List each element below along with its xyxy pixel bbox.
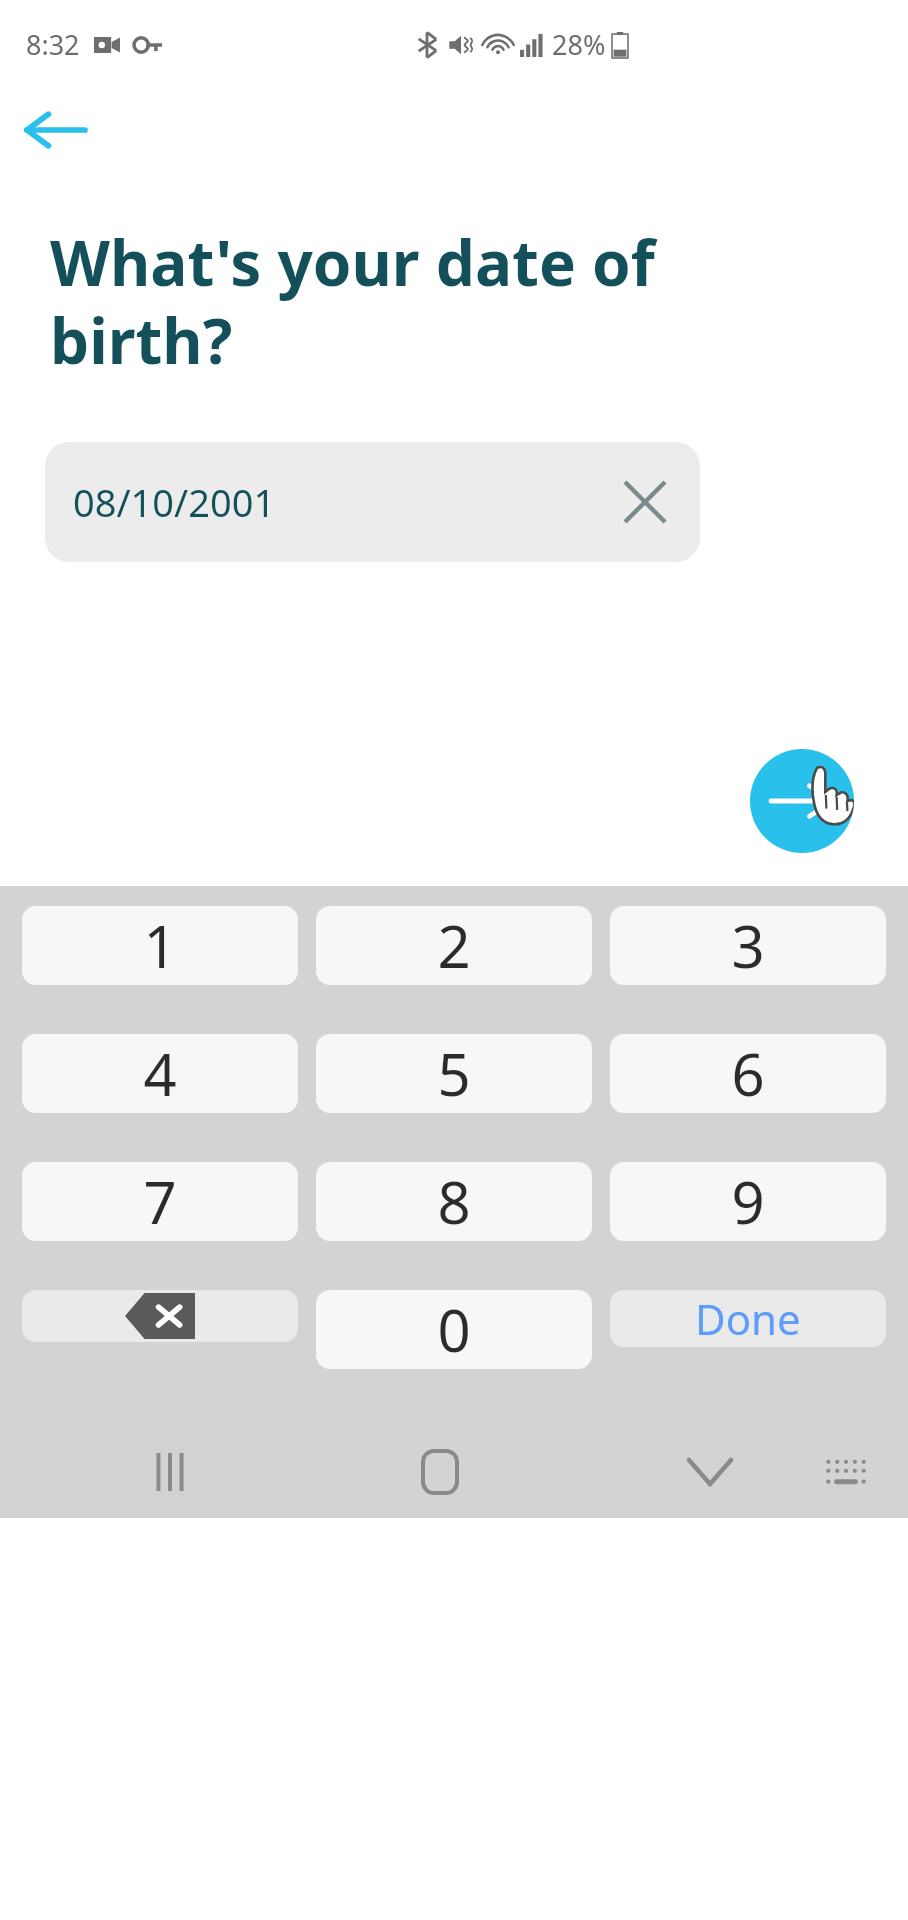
staticText: 2	[437, 906, 471, 985]
button[interactable]: Switch keyboard	[806, 1432, 886, 1512]
button[interactable]: 3	[610, 906, 886, 985]
button[interactable]: 8	[316, 1162, 592, 1241]
staticText: 6	[731, 1034, 765, 1113]
button[interactable]: Next	[750, 749, 854, 853]
button[interactable]: 7	[22, 1162, 298, 1241]
button[interactable]: 5	[316, 1034, 592, 1113]
button[interactable]: Hide keyboard	[670, 1432, 750, 1512]
staticText: 3	[731, 906, 765, 985]
button[interactable]: Back	[18, 92, 94, 168]
staticText: 8:32	[26, 26, 80, 63]
button[interactable]: Recents	[130, 1432, 210, 1512]
button[interactable]: 4	[22, 1034, 298, 1113]
button[interactable]: Clear	[618, 475, 672, 529]
staticText: 7	[143, 1162, 177, 1241]
staticText: 1	[143, 906, 177, 985]
staticText: 28%	[552, 26, 606, 63]
button[interactable]: 1	[22, 906, 298, 985]
button[interactable]: 08/10/2001	[45, 442, 700, 562]
staticText: 08/10/2001	[73, 476, 276, 528]
staticText: 9	[731, 1162, 765, 1241]
staticText: 8	[437, 1162, 471, 1241]
staticText: 0	[437, 1290, 471, 1369]
button[interactable]: Home	[400, 1432, 480, 1512]
button[interactable]: 0	[316, 1290, 592, 1369]
button[interactable]: Done	[610, 1290, 886, 1347]
staticText: What's your date of birth?	[50, 220, 818, 382]
button[interactable]: 2	[316, 906, 592, 985]
button[interactable]: 9	[610, 1162, 886, 1241]
staticText: 5	[437, 1034, 471, 1113]
staticText: 4	[143, 1034, 177, 1113]
button[interactable]: Backspace	[22, 1290, 298, 1342]
button[interactable]: 6	[610, 1034, 886, 1113]
staticText: Done	[695, 1290, 801, 1347]
